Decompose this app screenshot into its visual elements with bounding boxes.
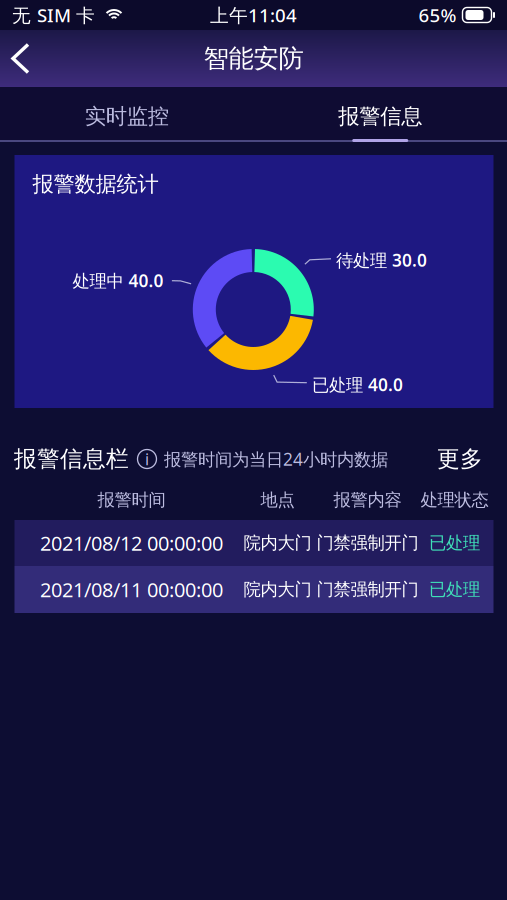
- staticText: 无 SIM 卡: [12, 3, 95, 27]
- staticText: 已处理: [429, 532, 480, 554]
- button[interactable]: 更多: [437, 445, 483, 473]
- staticText: 报警时间为当日24小时内数据: [164, 447, 388, 470]
- staticText: 门禁强制开门: [316, 532, 418, 554]
- staticText: 报警数据统计: [33, 171, 159, 197]
- button[interactable]: 实时监控: [0, 91, 253, 142]
- staticText: 65%: [418, 3, 456, 27]
- staticText: 报警内容: [333, 489, 401, 511]
- staticText: 已处理 40.0: [312, 373, 403, 396]
- staticText: 上午11:04: [210, 3, 297, 27]
- staticText: 已处理: [429, 579, 480, 600]
- staticText: 处理中 40.0: [72, 269, 163, 292]
- button[interactable]: 返回: [0, 30, 46, 86]
- staticText: 报警时间: [97, 489, 165, 511]
- staticText: 智能安防: [203, 43, 303, 74]
- staticText: 待处理 30.0: [336, 248, 427, 271]
- staticText: 2021/08/11 00:00:00: [40, 576, 223, 603]
- staticText: 报警信息: [338, 103, 422, 130]
- staticText: 2021/08/12 00:00:00: [40, 530, 223, 556]
- button[interactable]: 报警信息: [253, 91, 507, 142]
- staticText: 处理状态: [420, 489, 488, 511]
- staticText: 门禁强制开门: [316, 579, 418, 600]
- button[interactable]: 2021/08/12 00:00:00: [14, 520, 493, 566]
- staticText: 更多: [437, 445, 483, 473]
- staticText: 实时监控: [85, 103, 169, 130]
- staticText: 院内大门: [243, 532, 311, 554]
- staticText: i: [145, 448, 149, 470]
- staticText: 报警信息栏: [14, 445, 129, 473]
- button[interactable]: 2021/08/11 00:00:00: [14, 566, 493, 613]
- staticText: 院内大门: [243, 579, 311, 600]
- staticText: 地点: [260, 489, 294, 511]
